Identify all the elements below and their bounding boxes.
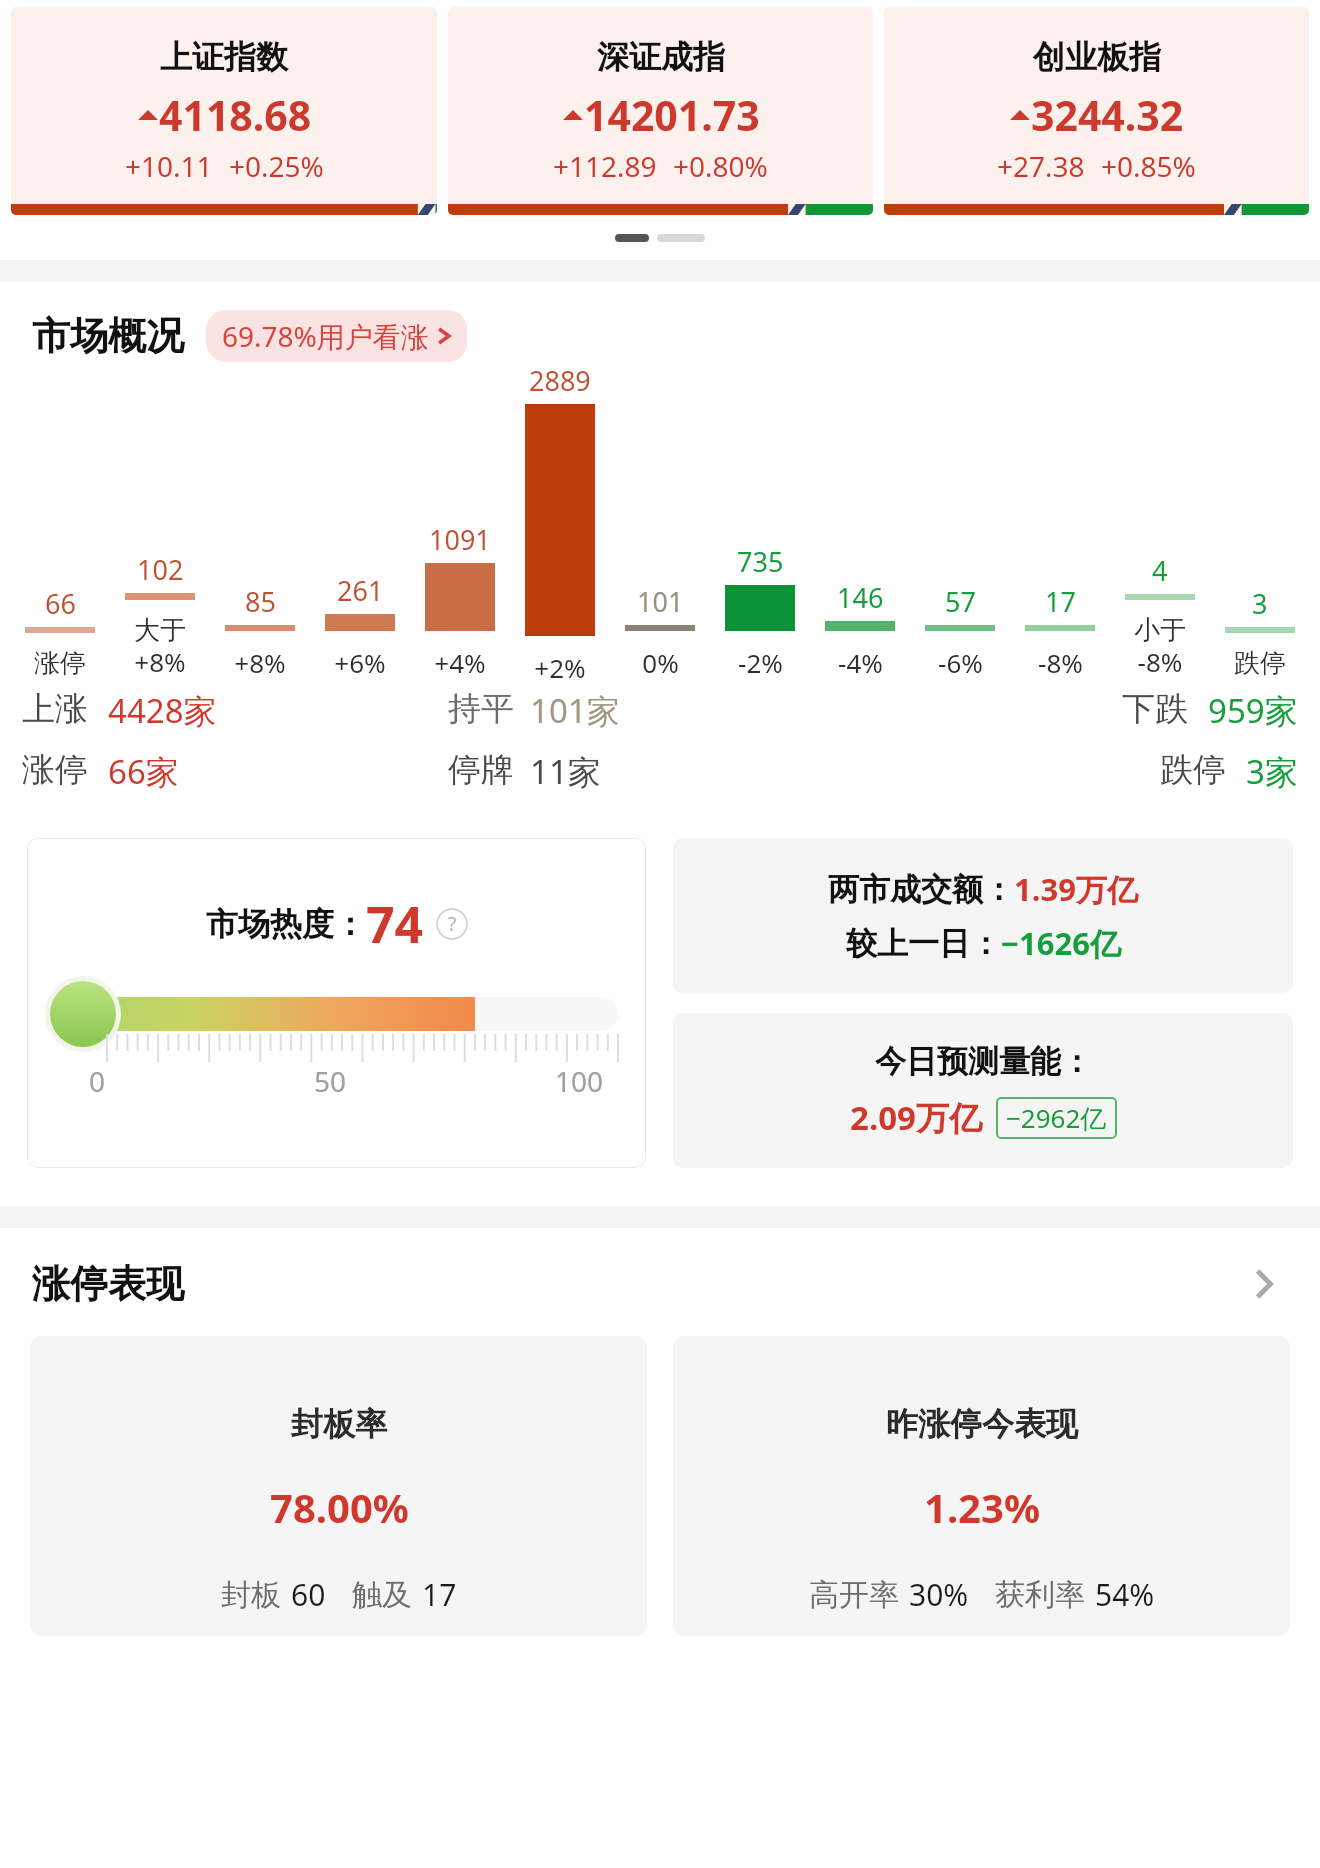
staticText: 60 (291, 1574, 326, 1615)
button[interactable]: 昨涨停今表现 (673, 1336, 1290, 1636)
staticText: 14201.73 (584, 87, 760, 143)
staticText: 17 (422, 1574, 457, 1615)
staticText: 735 (737, 543, 784, 580)
staticText: 持平 (448, 688, 514, 730)
staticText: +10.11 (125, 147, 213, 185)
staticText: 11家 (530, 749, 601, 794)
staticText: 较上一日： (846, 924, 1001, 963)
staticText: 66家 (108, 749, 179, 794)
staticText: 3244.32 (1031, 87, 1184, 143)
staticText: 下跌 (1122, 688, 1188, 730)
staticText: 4428家 (108, 688, 217, 733)
staticText: 停牌 (448, 749, 514, 791)
staticText: 101家 (530, 688, 620, 733)
staticText: 涨停 (22, 749, 88, 791)
staticText: −2962亿 (1006, 1100, 1107, 1136)
staticText: 小于 -8% (1134, 614, 1186, 680)
button[interactable]: 102 (110, 362, 210, 680)
staticText: 30% (909, 1574, 969, 1615)
button[interactable]: Help (436, 908, 468, 940)
staticText: 3家 (1246, 749, 1298, 794)
staticText: 昨涨停今表现 (886, 1404, 1078, 1444)
staticText: 1.23% (924, 1480, 1040, 1534)
staticText: 0% (642, 645, 679, 680)
staticText: 1091 (429, 521, 491, 558)
staticText: 跌停 (1160, 749, 1226, 791)
button[interactable]: 两市成交额： (673, 838, 1293, 993)
button[interactable]: 17 (1010, 362, 1110, 680)
staticText: 57 (945, 583, 976, 620)
button[interactable]: 66 (10, 362, 110, 680)
staticText: 市场热度： (206, 904, 366, 944)
staticText: 54% (1095, 1574, 1155, 1615)
staticText: 深证成指 (597, 37, 725, 77)
staticText: 74 (366, 890, 424, 958)
staticText: +0.80% (673, 147, 768, 185)
staticText: +8% (234, 645, 286, 680)
button[interactable]: 69.78%用户看涨 (222, 317, 451, 355)
button[interactable]: 今日预测量能： (673, 1013, 1293, 1168)
staticText: 2.09万亿 (850, 1095, 982, 1140)
button[interactable]: 1091 (410, 362, 510, 680)
staticText: 两市成交额： (828, 870, 1014, 909)
staticText: +0.85% (1101, 147, 1196, 185)
staticText: 上证指数 (160, 37, 288, 77)
button[interactable]: 深证成指 (448, 7, 873, 215)
staticText: 101 (637, 583, 684, 620)
button[interactable]: 101 (610, 362, 710, 680)
staticText: 触及 (352, 1576, 412, 1614)
staticText: 市场概况 (32, 312, 184, 360)
staticText: 创业板指 (1033, 37, 1161, 77)
staticText: +6% (334, 645, 386, 680)
staticText: 102 (137, 551, 184, 588)
staticText: 66 (45, 585, 76, 622)
staticText: +4% (434, 645, 486, 680)
staticText: -4% (838, 645, 883, 680)
staticText: 78.00% (270, 1480, 409, 1534)
staticText: 50 (314, 1062, 347, 1100)
button[interactable]: 85 (210, 362, 310, 680)
staticText: -8% (1038, 645, 1083, 680)
staticText: +27.38 (997, 147, 1085, 185)
staticText: ? (448, 911, 457, 937)
staticText: 上涨 (22, 688, 88, 730)
staticText: -6% (938, 645, 983, 680)
staticText: 85 (245, 583, 276, 620)
staticText: 封板 (221, 1576, 281, 1614)
button[interactable]: 封板率 (30, 1336, 647, 1636)
button[interactable]: 市场热度： (27, 838, 646, 1168)
staticText: 17 (1045, 583, 1076, 620)
staticText: +112.89 (553, 147, 657, 185)
staticText: 4 (1152, 552, 1168, 589)
button[interactable]: 上证指数 (11, 7, 437, 215)
staticText: 获利率 (995, 1576, 1085, 1614)
staticText: 4118.68 (159, 87, 312, 143)
staticText: 0 (89, 1062, 106, 1100)
staticText: 261 (337, 572, 384, 609)
staticText: 3 (1252, 585, 1268, 622)
staticText: −1626亿 (1001, 922, 1121, 964)
button[interactable]: 735 (710, 362, 810, 680)
button[interactable]: 57 (910, 362, 1010, 680)
button[interactable]: 3 (1210, 362, 1310, 680)
staticText: 959家 (1208, 688, 1298, 733)
button[interactable]: 创业板指 (884, 7, 1309, 215)
button[interactable]: More (1240, 1260, 1288, 1308)
staticText: 封板率 (291, 1404, 387, 1444)
staticText: 高开率 (809, 1576, 899, 1614)
staticText: 大于 +8% (134, 614, 186, 680)
staticText: 涨停表现 (32, 1260, 184, 1308)
button[interactable]: 146 (810, 362, 910, 680)
button[interactable]: 261 (310, 362, 410, 680)
button[interactable]: 2889 (510, 362, 610, 680)
button[interactable]: 4 (1110, 362, 1210, 680)
staticText: 涨停 (34, 647, 86, 680)
staticText: 1.39万亿 (1014, 868, 1138, 910)
staticText: 2889 (529, 362, 591, 399)
staticText: 100 (555, 1062, 604, 1100)
staticText: 今日预测量能： (875, 1042, 1092, 1081)
staticText: +2% (534, 650, 586, 680)
staticText: 146 (837, 579, 884, 616)
staticText: 跌停 (1234, 647, 1286, 680)
staticText: +0.25% (229, 147, 324, 185)
